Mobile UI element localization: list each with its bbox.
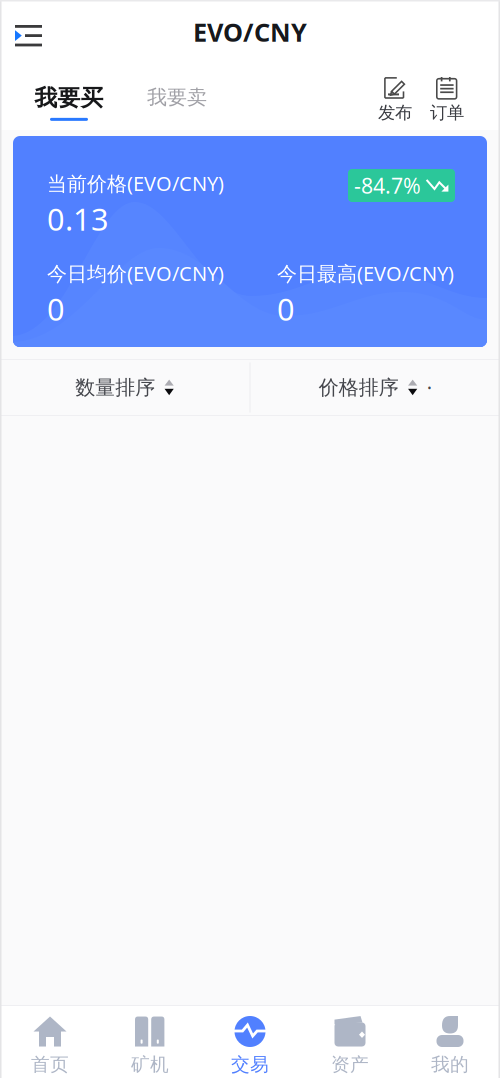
staticText: 价格排序 bbox=[319, 375, 399, 400]
staticText: 今日最高(EVO/CNY) bbox=[277, 260, 454, 287]
staticText: 我的 bbox=[431, 1053, 469, 1076]
staticText: 我要卖 bbox=[147, 85, 207, 110]
staticText: 订单 bbox=[430, 102, 464, 123]
staticText: 矿机 bbox=[131, 1053, 169, 1076]
button[interactable]: 我要买 bbox=[32, 62, 106, 130]
staticText: 0.13 bbox=[47, 199, 109, 239]
button[interactable]: 我要卖 bbox=[144, 62, 210, 130]
button[interactable]: 价格排序 bbox=[250, 359, 500, 416]
staticText: 今日均价(EVO/CNY) bbox=[47, 260, 224, 287]
button[interactable]: 首页 bbox=[0, 1005, 100, 1078]
button[interactable]: 订单 bbox=[421, 62, 473, 130]
staticText: 当前价格(EVO/CNY) bbox=[47, 170, 224, 197]
staticText: 发布 bbox=[378, 102, 412, 123]
button[interactable]: 矿机 bbox=[100, 1005, 200, 1078]
staticText: EVO/CNY bbox=[193, 15, 307, 49]
staticText: 首页 bbox=[31, 1053, 69, 1076]
staticText: 数量排序 bbox=[75, 375, 155, 400]
staticText: · bbox=[427, 374, 432, 401]
staticText: 0 bbox=[47, 289, 65, 329]
staticText: 0 bbox=[277, 289, 295, 329]
staticText: 我要买 bbox=[34, 84, 103, 112]
button[interactable]: Menu bbox=[0, 0, 56, 62]
button[interactable]: 资产 bbox=[300, 1005, 400, 1078]
staticText: 资产 bbox=[331, 1053, 369, 1076]
button[interactable]: 发布 bbox=[369, 62, 421, 130]
button[interactable]: 数量排序 bbox=[0, 359, 249, 416]
staticText: 交易 bbox=[231, 1053, 269, 1076]
button[interactable]: 我的 bbox=[400, 1005, 500, 1078]
button[interactable]: 交易 bbox=[200, 1005, 300, 1078]
staticText: -84.7% bbox=[354, 171, 421, 200]
